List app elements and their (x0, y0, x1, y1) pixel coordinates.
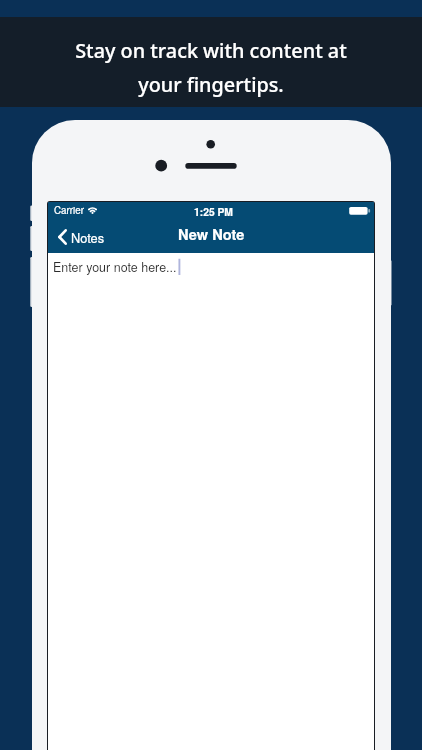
staticText: Enter your note here... (53, 258, 177, 276)
staticText: New Note (178, 224, 245, 245)
staticText: Carrier (54, 203, 84, 217)
other: Back to Notes (58, 229, 67, 245)
button[interactable]: Back to Notes (55, 225, 108, 248)
staticText: Stay on track with content at your finge… (0, 37, 422, 97)
staticText: Notes (71, 228, 105, 246)
staticText: 1:25 PM (194, 204, 233, 219)
button[interactable]: Enter your note here... (48, 253, 374, 750)
